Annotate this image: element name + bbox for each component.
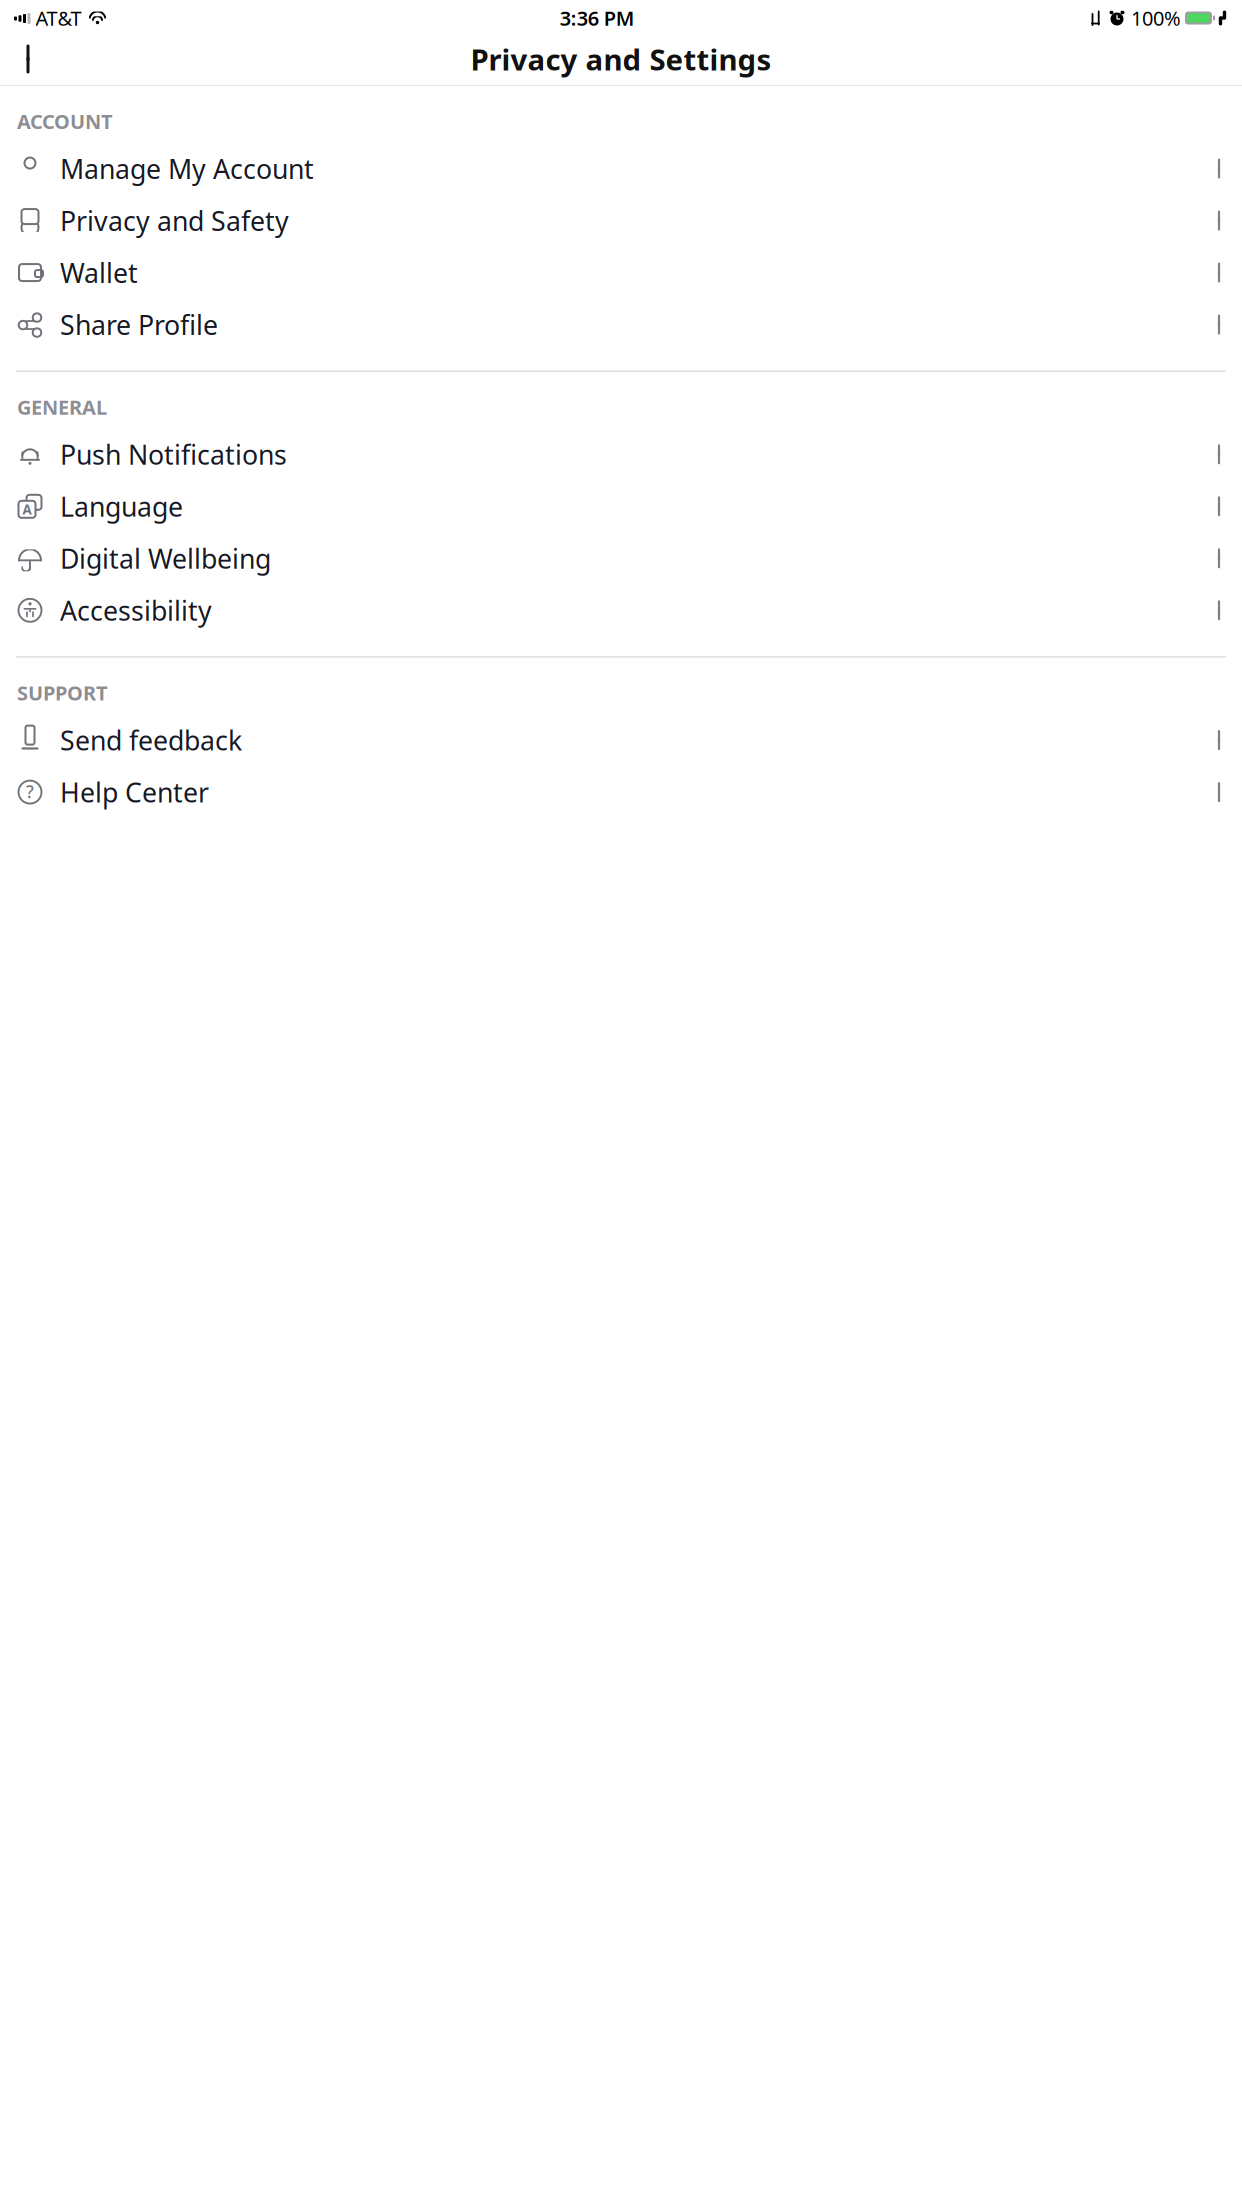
staticText: Share Profile — [60, 307, 218, 342]
staticText: Accessibility — [60, 593, 212, 628]
staticText: Digital Wellbeing — [60, 541, 271, 576]
button[interactable]: Send feedback — [0, 714, 1242, 766]
staticText: AT&T — [35, 5, 81, 31]
staticText: 100% — [1131, 5, 1181, 31]
staticText: GENERAL — [17, 394, 107, 420]
button[interactable]: Digital Wellbeing — [0, 532, 1242, 584]
staticText: Manage My Account — [60, 151, 314, 186]
button[interactable]: Back — [8, 36, 44, 82]
staticText: Wallet — [60, 255, 138, 290]
button[interactable]: Wallet — [0, 247, 1242, 299]
staticText: ? — [26, 780, 34, 803]
button[interactable]: Push Notifications — [0, 428, 1242, 480]
staticText: A — [22, 500, 31, 518]
staticText: ACCOUNT — [17, 108, 113, 135]
button[interactable]: A — [0, 480, 1242, 532]
staticText: Push Notifications — [60, 437, 287, 472]
button[interactable]: Accessibility — [0, 584, 1242, 636]
staticText: Language — [60, 489, 183, 524]
staticText: Send feedback — [60, 722, 242, 758]
button[interactable]: ? — [0, 766, 1242, 818]
button[interactable]: Manage My Account — [0, 143, 1242, 195]
staticText: Help Center — [60, 774, 209, 810]
staticText: SUPPORT — [17, 679, 108, 706]
button[interactable]: Share Profile — [0, 299, 1242, 351]
staticText: Privacy and Settings — [470, 39, 771, 78]
staticText: Privacy and Safety — [60, 203, 289, 238]
button[interactable]: Privacy and Safety — [0, 195, 1242, 247]
staticText: 3:36 PM — [560, 5, 635, 31]
